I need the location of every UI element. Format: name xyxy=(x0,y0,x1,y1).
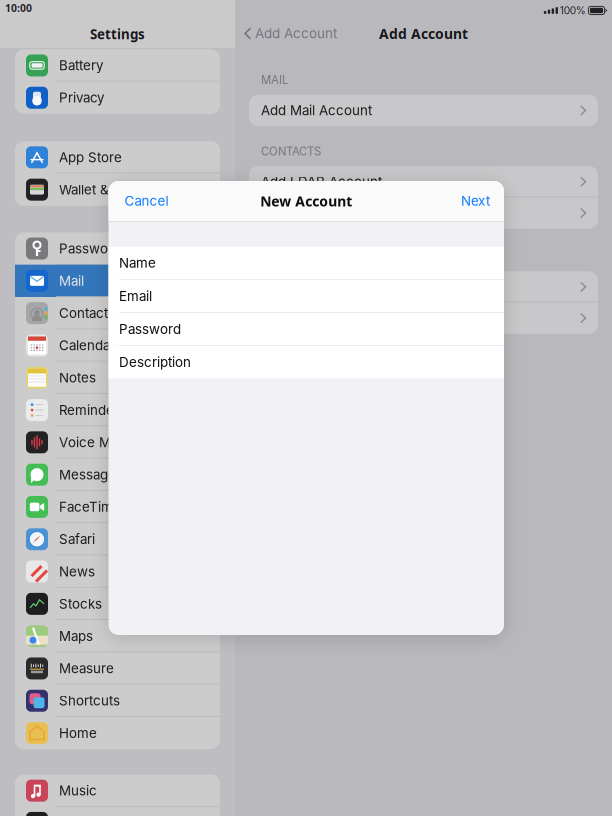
button[interactable]: Add CardDAV Account xyxy=(249,197,598,229)
staticText: Add Subscribed Calendar xyxy=(261,310,422,326)
staticText: Contacts xyxy=(59,305,115,321)
staticText: Password xyxy=(119,321,181,337)
staticText: Notes xyxy=(59,370,96,386)
staticText: Add Account xyxy=(379,24,468,43)
staticText: Name xyxy=(119,255,156,271)
staticText: 10:00 xyxy=(5,1,32,15)
staticText: Home xyxy=(59,725,97,741)
button[interactable]: Mail xyxy=(15,265,220,297)
staticText: News xyxy=(59,563,95,580)
staticText: Music xyxy=(59,783,97,799)
button[interactable]: Passwords xyxy=(15,232,220,265)
staticText: MAIL xyxy=(261,73,288,87)
button[interactable]: Reminders xyxy=(15,394,220,426)
staticText: FaceTime xyxy=(59,499,121,515)
button[interactable]: Messages xyxy=(15,458,220,491)
button[interactable]: App Store xyxy=(15,141,220,173)
button[interactable]: Email xyxy=(108,280,504,312)
button[interactable]: Battery xyxy=(15,49,220,82)
staticText: Add Account xyxy=(255,25,337,41)
button[interactable]: FaceTime xyxy=(15,491,220,523)
staticText: Settings xyxy=(90,25,145,43)
button[interactable]: Add Mail Account xyxy=(249,95,598,126)
staticText: Email xyxy=(119,288,152,304)
staticText: Measure xyxy=(59,660,114,676)
staticText: Messages xyxy=(59,467,123,483)
staticText: Add LDAP Account xyxy=(261,174,382,190)
button[interactable]: Add CalDAV Account xyxy=(249,271,598,302)
staticText: New Account xyxy=(260,192,352,210)
button[interactable]: News xyxy=(15,555,220,588)
staticText: Privacy xyxy=(59,90,104,106)
staticText: Reminders xyxy=(59,402,126,418)
button[interactable]: Shortcuts xyxy=(15,685,220,717)
button[interactable]: Measure xyxy=(15,652,220,685)
button[interactable]: Music xyxy=(15,774,220,807)
staticText: Add CalDAV Account xyxy=(261,279,393,295)
staticText: Add Mail Account xyxy=(261,102,372,118)
button[interactable]: Password xyxy=(108,313,504,345)
staticText: Passwords xyxy=(59,240,128,257)
staticText: Safari xyxy=(59,531,95,547)
button[interactable]: Add LDAP Account xyxy=(249,166,598,197)
button[interactable]: Name xyxy=(108,247,504,279)
button[interactable]: Home xyxy=(15,717,220,749)
staticText: CONTACTS xyxy=(261,145,321,158)
staticText: Battery xyxy=(59,57,103,73)
button[interactable]: Wallet & Apple Pay xyxy=(15,173,220,206)
staticText: Maps xyxy=(59,628,93,644)
button[interactable]: Calendar xyxy=(15,329,220,362)
staticText: 100% xyxy=(560,4,586,17)
button[interactable]: Cancel xyxy=(108,181,184,221)
staticText: Stocks xyxy=(59,596,102,612)
button[interactable]: Safari xyxy=(15,523,220,555)
staticText: Next xyxy=(461,193,490,209)
button[interactable]: Next xyxy=(447,181,504,221)
staticText: Voice Memos xyxy=(59,434,146,450)
staticText: Calendar xyxy=(59,337,115,353)
button[interactable]: Contacts xyxy=(15,297,220,329)
button[interactable]: tv xyxy=(15,807,220,816)
button[interactable]: Stocks xyxy=(15,588,220,620)
button[interactable]: Notes xyxy=(15,362,220,394)
staticText: Wallet & Apple Pay xyxy=(59,182,176,198)
staticText: Mail xyxy=(59,273,84,289)
button[interactable]: Add Account xyxy=(235,20,346,47)
staticText: Add CardDAV Account xyxy=(261,205,403,221)
staticText: Description xyxy=(119,354,191,370)
staticText: Shortcuts xyxy=(59,693,120,709)
staticText: App Store xyxy=(59,149,122,165)
button[interactable]: Voice Memos xyxy=(15,426,220,458)
staticText: Cancel xyxy=(124,193,168,209)
button[interactable]: Description xyxy=(108,346,504,378)
button[interactable]: Maps xyxy=(15,620,220,652)
button[interactable]: Add Subscribed Calendar xyxy=(249,302,598,334)
button[interactable]: Privacy xyxy=(15,82,220,114)
